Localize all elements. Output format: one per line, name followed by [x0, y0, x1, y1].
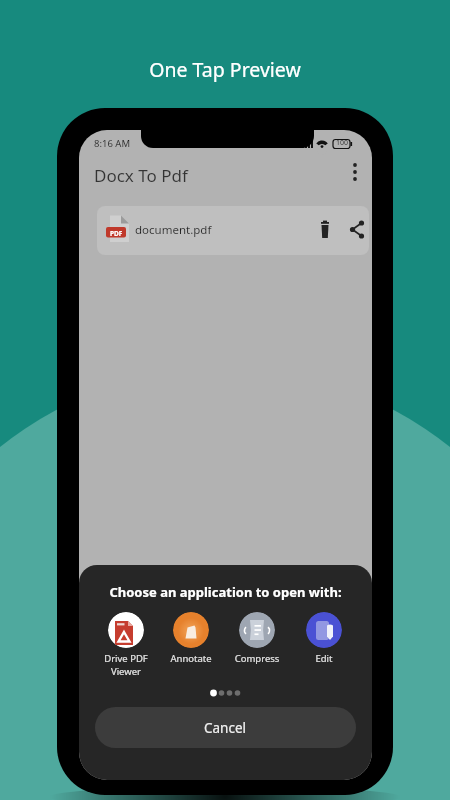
staticText: Cancel [204, 719, 247, 737]
button[interactable]: Cancel [95, 707, 356, 748]
staticText: 100 [336, 138, 349, 148]
staticText: Annotate [158, 652, 224, 665]
button[interactable]: Compress [224, 612, 290, 665]
staticText: Compress [224, 652, 290, 665]
button[interactable]: Drive PDF [93, 612, 159, 678]
staticText: Drive PDF [93, 652, 159, 665]
button[interactable]: Annotate [158, 612, 224, 665]
staticText: Choose an application to open with: [79, 583, 372, 601]
staticText: One Tap Preview [0, 56, 450, 83]
button[interactable] [313, 218, 337, 242]
staticText: Docx To Pdf [94, 164, 188, 187]
button[interactable] [345, 218, 369, 242]
staticText: document.pdf [135, 222, 212, 238]
staticText: 8:16 AM [94, 137, 131, 150]
staticText: Edit [291, 652, 357, 665]
button[interactable]: Edit [291, 612, 357, 665]
button[interactable] [345, 160, 365, 184]
staticText: PDF [110, 229, 123, 238]
staticText: Viewer [93, 665, 159, 678]
button[interactable]: PDF [97, 206, 369, 255]
